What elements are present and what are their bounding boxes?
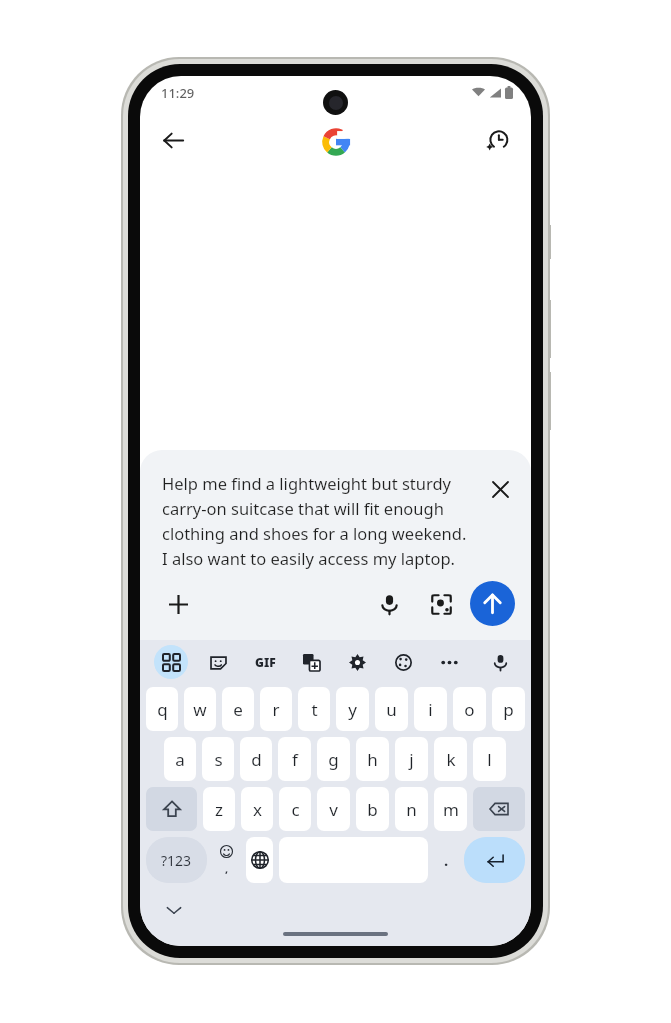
button[interactable]: c [279,787,311,831]
staticText: i [428,698,433,721]
button[interactable]: More options [432,645,466,679]
staticText: z [215,798,223,821]
button[interactable]: u [375,687,408,731]
button[interactable]: Shift [146,787,197,831]
button[interactable]: Voice input [483,645,517,679]
button[interactable]: Close [483,472,517,506]
staticText: r [272,698,280,721]
button[interactable]: GIF [248,645,282,679]
button[interactable]: s [202,737,234,781]
button[interactable]: Add [158,584,198,624]
button[interactable]: Enter [464,837,525,883]
button[interactable]: r [260,687,292,731]
staticText: h [367,748,378,771]
staticText: d [251,748,262,771]
staticText: p [503,698,514,721]
staticText: k [446,748,456,771]
staticText: w [193,698,207,721]
button[interactable]: Emoji [210,837,243,883]
button[interactable]: o [453,687,486,731]
staticText: t [311,698,318,721]
button[interactable]: f [278,737,311,781]
button[interactable]: Themes [386,645,420,679]
staticText: b [367,798,378,821]
button[interactable]: b [356,787,389,831]
button[interactable]: Change language [246,837,273,883]
staticText: u [386,698,397,721]
staticText: . [444,850,449,870]
staticText: x [253,798,262,821]
button[interactable]: m [434,787,467,831]
staticText: m [443,798,459,821]
button[interactable]: j [395,737,428,781]
button[interactable]: z [203,787,235,831]
button[interactable]: t [298,687,330,731]
button[interactable]: Hide keyboard [156,892,192,928]
button[interactable]: Google Lens [420,583,462,625]
staticText: e [233,698,243,721]
button[interactable]: . [431,834,461,886]
button[interactable]: i [414,687,447,731]
staticText: ?123 [161,851,192,870]
button[interactable]: Translate [294,645,328,679]
staticText: l [487,748,492,771]
button[interactable]: x [241,787,273,831]
button[interactable]: Send [470,581,515,626]
staticText: a [175,748,185,771]
button[interactable]: v [317,787,350,831]
button[interactable]: Stickers [201,645,235,679]
button[interactable]: l [473,737,506,781]
staticText: y [348,698,357,721]
button[interactable]: p [492,687,525,731]
staticText: q [157,698,168,721]
button[interactable]: Back [150,117,196,163]
staticText: s [214,748,223,771]
staticText: f [292,748,298,771]
button[interactable]: y [336,687,369,731]
staticText: 11:29 [161,84,195,102]
button[interactable]: d [240,737,272,781]
button[interactable]: Keyboard modes [154,645,188,679]
button[interactable]: ?123 [146,837,207,883]
button[interactable]: Settings [340,645,374,679]
staticText: c [291,798,300,821]
staticText: , [225,861,229,876]
button[interactable]: a [164,737,196,781]
staticText: GIF [255,654,276,670]
button[interactable]: w [184,687,216,731]
button[interactable]: q [146,687,178,731]
staticText: o [464,698,475,721]
button[interactable]: k [434,737,467,781]
button[interactable]: Voice search [368,583,410,625]
button[interactable]: h [356,737,389,781]
staticText: g [328,748,339,771]
staticText: v [329,798,338,821]
staticText: n [406,798,417,821]
button[interactable]: g [317,737,350,781]
button[interactable]: e [222,687,254,731]
staticText: j [409,748,414,771]
button[interactable]: Backspace [473,787,525,831]
button[interactable]: History [475,118,519,162]
button[interactable]: n [395,787,428,831]
staticText: Help me find a lightweight but sturdy ca… [162,472,475,569]
